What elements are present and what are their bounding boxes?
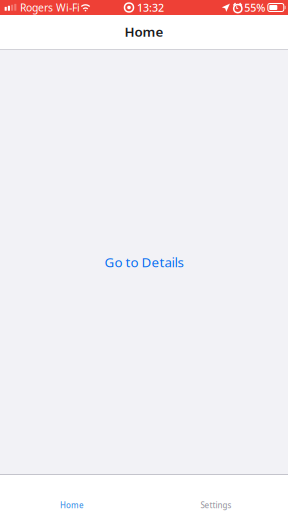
button[interactable]: Go to Details <box>104 253 183 271</box>
staticText: 55% <box>244 0 265 15</box>
staticText: Settings <box>200 500 231 510</box>
button[interactable]: Settings <box>144 474 288 512</box>
staticText: Home <box>124 23 163 40</box>
staticText: Home <box>60 500 84 510</box>
staticText: Go to Details <box>104 253 183 271</box>
staticText: 13:32 <box>137 0 164 15</box>
staticText: Rogers Wi-Fi <box>20 0 80 15</box>
button[interactable]: Home <box>0 474 144 512</box>
